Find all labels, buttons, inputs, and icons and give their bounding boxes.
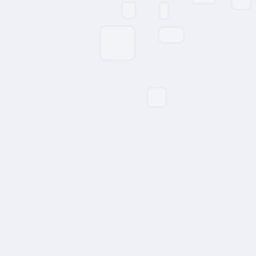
button[interactable]: Status <box>192 0 216 4</box>
button[interactable]: Menu <box>231 0 251 10</box>
button[interactable]: Shield <box>122 2 135 19</box>
button[interactable]: Tag <box>158 27 184 43</box>
button[interactable]: Battery <box>159 2 168 19</box>
